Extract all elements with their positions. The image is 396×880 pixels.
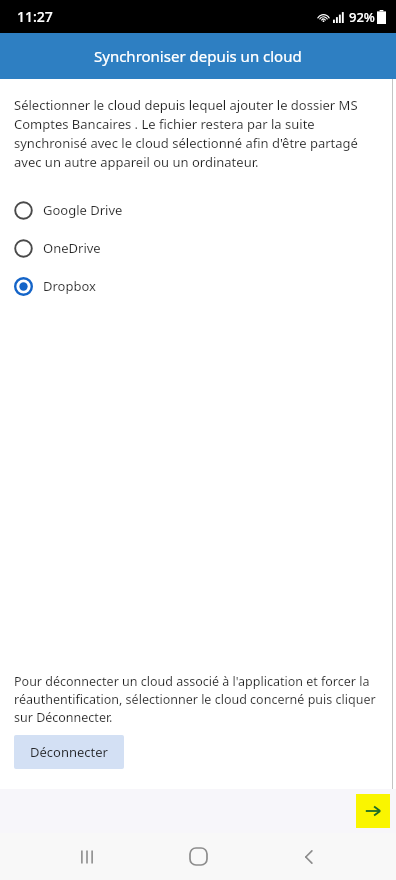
button[interactable]: Suivant xyxy=(356,794,390,828)
staticText: Sélectionner le cloud depuis lequel ajou… xyxy=(14,96,382,171)
staticText: Déconnecter xyxy=(30,743,108,761)
button[interactable]: OneDrive xyxy=(0,229,396,267)
staticText: Google Drive xyxy=(43,201,123,219)
button[interactable]: Google Drive xyxy=(0,191,396,229)
staticText: OneDrive xyxy=(43,239,101,257)
button[interactable]: Back xyxy=(285,833,333,880)
staticText: Dropbox xyxy=(43,277,96,295)
staticText: 92% xyxy=(349,8,375,26)
button[interactable]: Déconnecter xyxy=(14,735,124,769)
button[interactable]: Dropbox xyxy=(0,267,396,305)
staticText: 11:27 xyxy=(17,7,53,26)
staticText: Pour déconnecter un cloud associé à l'ap… xyxy=(14,673,382,726)
staticText: Synchroniser depuis un cloud xyxy=(94,46,302,66)
button[interactable]: Home xyxy=(174,833,222,880)
button[interactable]: Recents xyxy=(63,833,111,880)
